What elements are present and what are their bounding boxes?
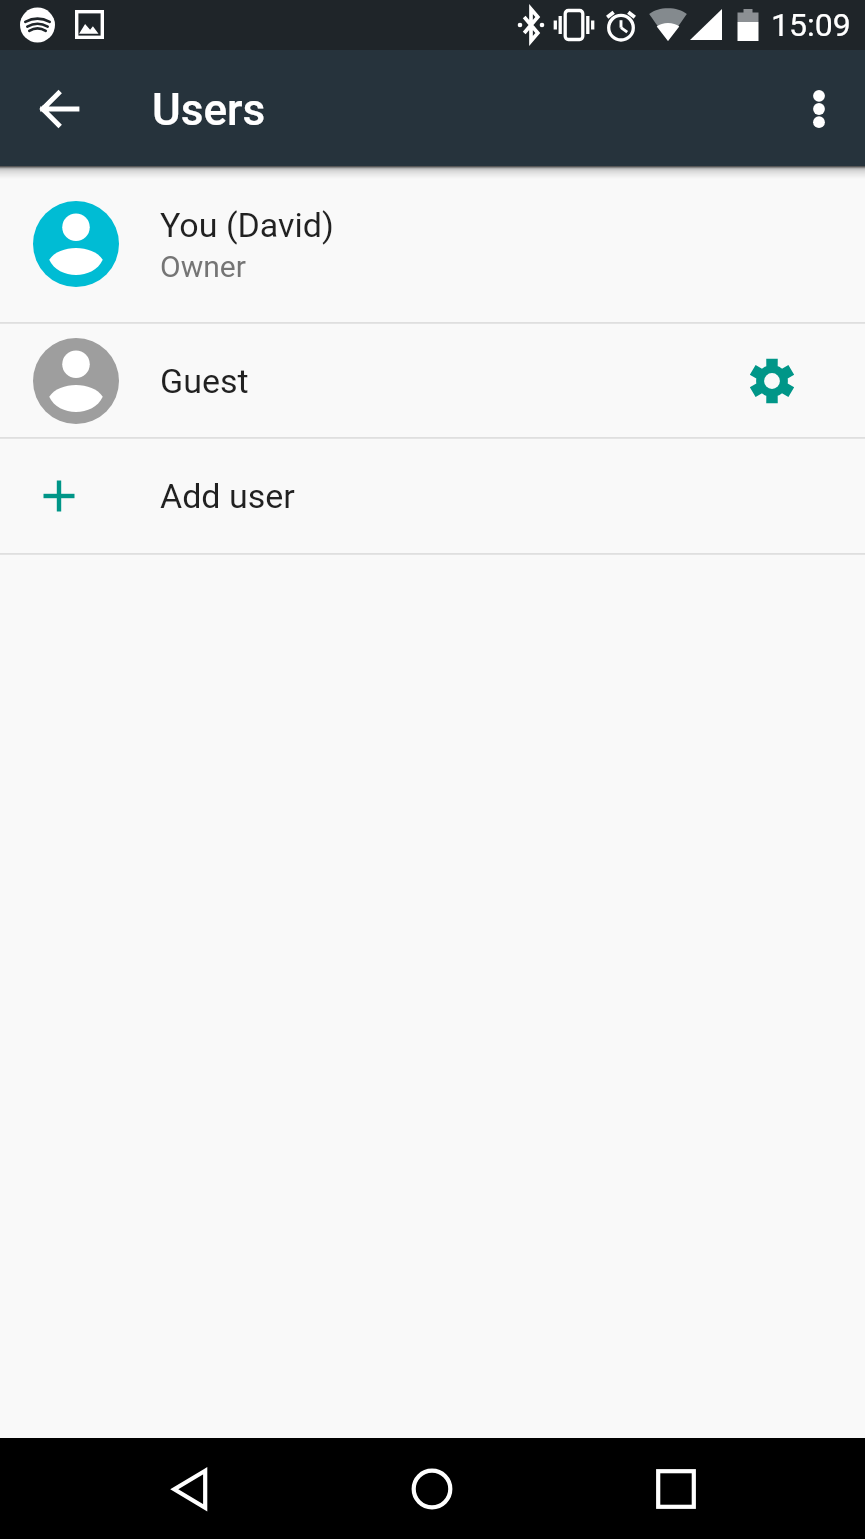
- button[interactable]: Guest: [0, 324, 865, 437]
- staticText: Add user: [160, 476, 295, 516]
- button[interactable]: Add user: [0, 439, 865, 553]
- button[interactable]: More options: [777, 67, 861, 151]
- button[interactable]: Recent apps: [596, 1438, 756, 1539]
- button[interactable]: You (David): [0, 166, 865, 322]
- button[interactable]: Guest settings: [724, 333, 820, 429]
- staticText: Guest: [160, 361, 249, 401]
- button[interactable]: Back: [110, 1438, 270, 1539]
- button[interactable]: Home: [352, 1438, 512, 1539]
- staticText: 15:09: [771, 6, 851, 44]
- staticText: You (David): [160, 205, 334, 245]
- staticText: Owner: [160, 249, 246, 284]
- staticText: Users: [152, 84, 266, 136]
- button[interactable]: Back: [17, 67, 101, 151]
